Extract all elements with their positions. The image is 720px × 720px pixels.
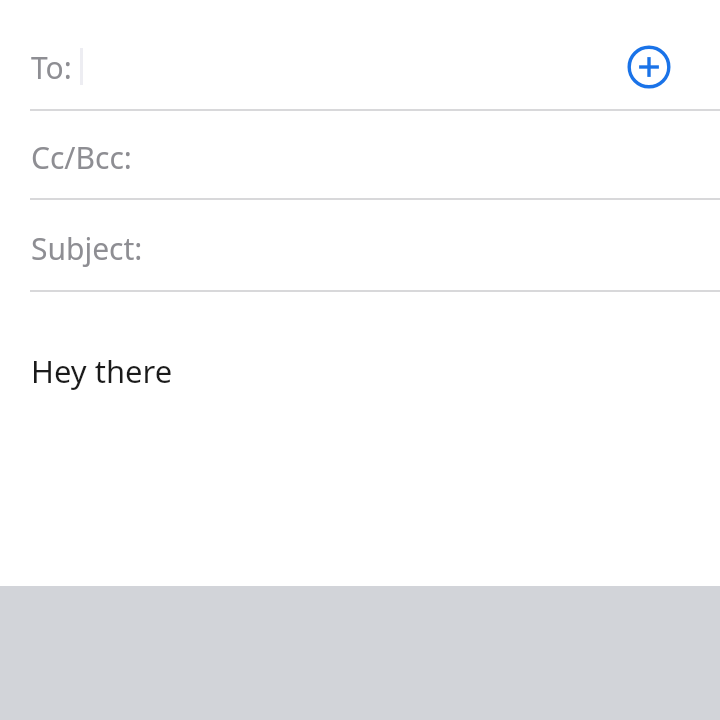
button[interactable]: To: [0, 0, 720, 111]
staticText: Cc/Bcc: [31, 137, 132, 178]
button[interactable]: Add recipient [625, 43, 673, 91]
button[interactable]: Cc/Bcc: [0, 111, 720, 200]
button[interactable]: Hey there [0, 292, 720, 586]
staticText: Subject: [31, 228, 143, 269]
button[interactable]: Subject: [0, 200, 720, 292]
staticText: Hey there [31, 350, 173, 392]
staticText: To: [31, 47, 72, 88]
